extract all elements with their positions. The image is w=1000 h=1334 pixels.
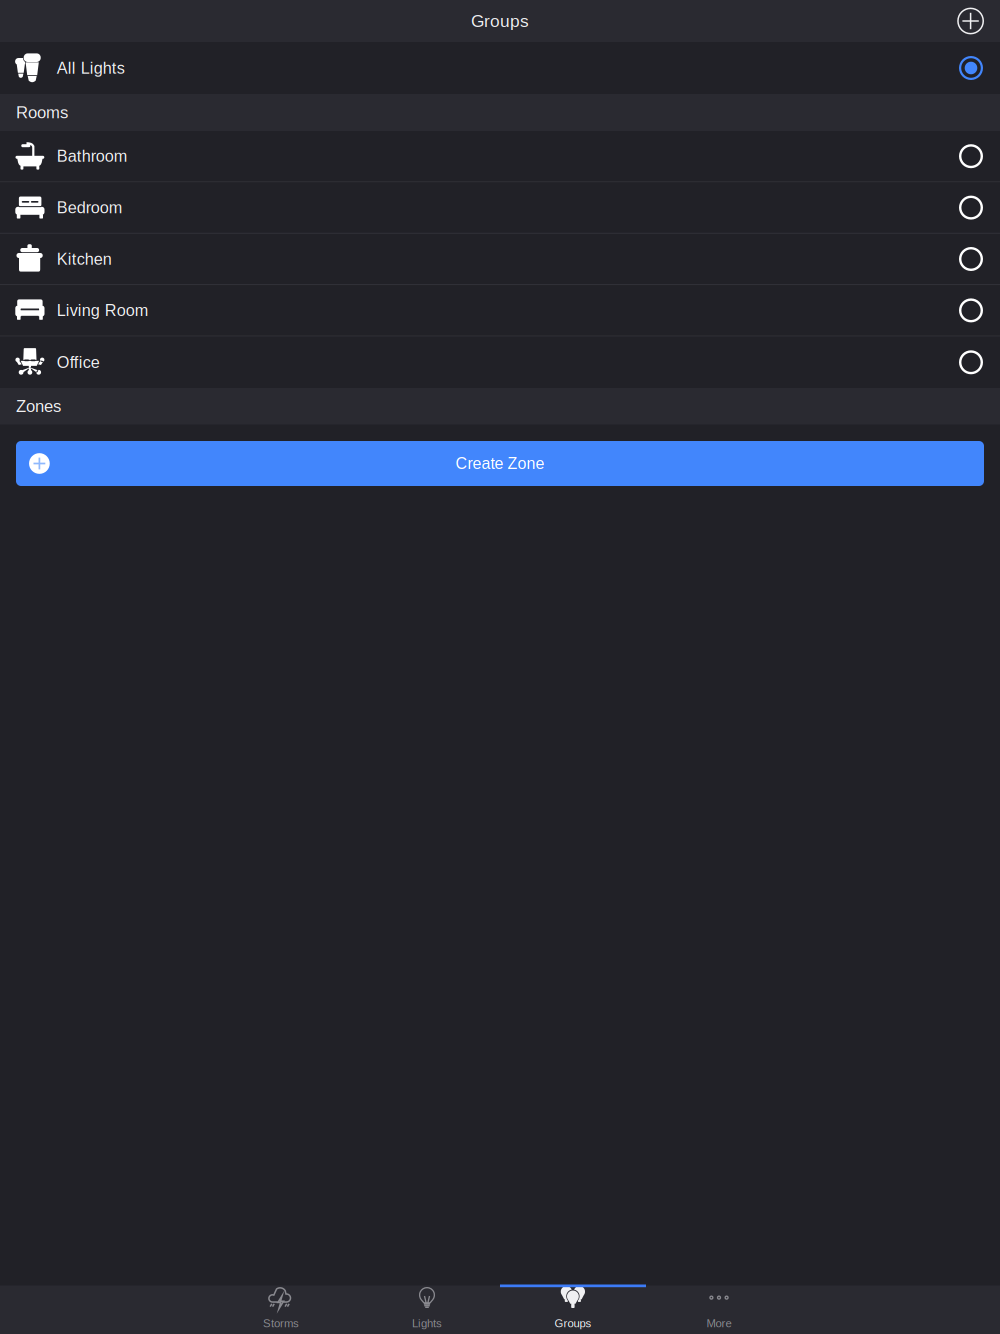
staticText: Lights — [412, 1317, 442, 1330]
staticText: Kitchen — [57, 250, 112, 268]
button[interactable]: More — [646, 1286, 792, 1334]
button[interactable]: Lights — [354, 1286, 500, 1334]
staticText: Office — [57, 353, 100, 371]
staticText: Create Zone — [455, 455, 544, 472]
button[interactable]: Add group — [957, 8, 984, 34]
staticText: Storms — [263, 1317, 299, 1330]
button[interactable]: Living Room — [0, 285, 1000, 336]
staticText: Groups — [471, 11, 529, 31]
button[interactable]: Storms — [208, 1286, 354, 1334]
staticText: Zones — [16, 397, 61, 415]
staticText: Bathroom — [57, 147, 128, 165]
button[interactable]: Groups — [500, 1286, 646, 1334]
staticText: All Lights — [57, 59, 125, 77]
staticText: Groups — [554, 1317, 591, 1330]
staticText: Living Room — [57, 301, 149, 319]
button[interactable]: Bathroom — [0, 131, 1000, 181]
button[interactable]: Kitchen — [0, 234, 1000, 284]
staticText: More — [706, 1317, 731, 1330]
button[interactable]: All Lights — [0, 42, 1000, 94]
button[interactable]: Office — [0, 337, 1000, 388]
staticText: Bedroom — [57, 198, 123, 217]
button[interactable]: Bedroom — [0, 182, 1000, 233]
button[interactable]: Create Zone — [16, 441, 984, 486]
staticText: Rooms — [16, 103, 68, 122]
